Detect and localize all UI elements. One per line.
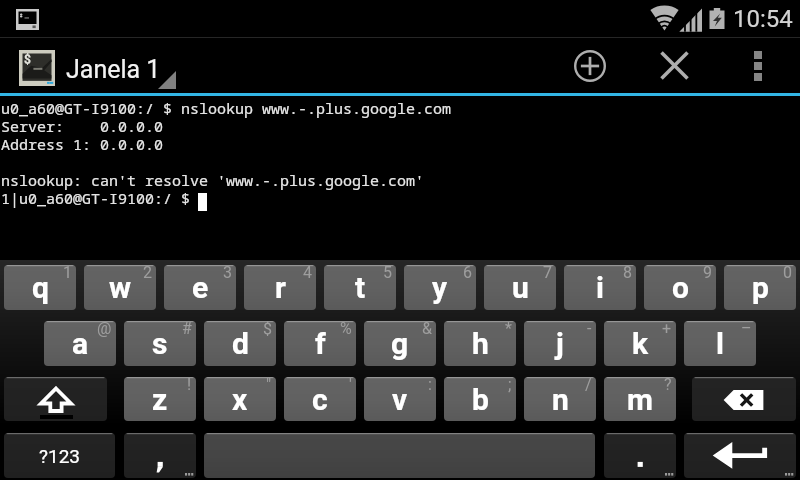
button[interactable]: ?123 — [4, 433, 115, 478]
button[interactable]: r — [244, 265, 316, 310]
staticText: Server: 0.0.0.0 — [1, 116, 164, 136]
staticText: + — [662, 321, 672, 338]
staticText: 1|u0_a60@GT-I9100:/ $ — [1, 188, 200, 208]
button[interactable]: Comma — [124, 433, 196, 478]
button[interactable]: q — [4, 265, 76, 310]
staticText: " — [266, 377, 272, 394]
staticText: ?123 — [39, 445, 81, 467]
button[interactable]: New window — [558, 38, 622, 93]
staticText: : — [428, 377, 432, 394]
staticText: $ — [263, 321, 272, 338]
button[interactable]: Period — [604, 433, 676, 478]
staticText: % — [340, 321, 352, 338]
staticText: 7 — [543, 265, 552, 282]
button[interactable]: k — [604, 321, 676, 366]
staticText: y — [432, 270, 448, 305]
button[interactable]: z — [124, 377, 196, 421]
staticText: ? — [664, 377, 672, 394]
staticText: o — [672, 270, 689, 305]
button[interactable]: Space — [204, 433, 595, 478]
staticText: j — [556, 326, 564, 361]
staticText: – — [741, 321, 752, 338]
staticText: u0_a60@GT-I9100:/ $ nslookup www.-.plus.… — [1, 98, 452, 118]
staticText: ; — [508, 377, 512, 394]
staticText: w — [109, 270, 132, 305]
staticText: z — [152, 382, 168, 417]
button[interactable]: c — [284, 377, 356, 421]
staticText: r — [275, 270, 286, 305]
staticText: & — [422, 321, 432, 338]
staticText: k — [632, 326, 649, 361]
staticText: ! — [187, 377, 192, 394]
staticText: g — [391, 326, 409, 361]
staticText: 4 — [303, 265, 312, 282]
button[interactable]: t — [324, 265, 396, 310]
staticText: Janela 1 — [66, 55, 161, 84]
staticText: / — [585, 377, 592, 394]
staticText: 3 — [223, 265, 232, 282]
button[interactable]: Enter — [684, 433, 796, 478]
button[interactable]: u — [484, 265, 556, 310]
button[interactable]: d — [204, 321, 276, 366]
staticText: @ — [97, 321, 112, 338]
button[interactable]: b — [444, 377, 516, 421]
staticText: 10:54 — [733, 5, 793, 33]
button[interactable]: Close window — [642, 38, 706, 93]
staticText: p — [752, 270, 769, 305]
staticText: a — [72, 326, 89, 361]
button[interactable]: f — [284, 321, 356, 366]
staticText: 0 — [783, 265, 792, 282]
button[interactable]: n — [524, 377, 596, 421]
button[interactable]: s — [124, 321, 196, 366]
staticText: n — [552, 382, 569, 417]
staticText: - — [587, 321, 592, 338]
button[interactable]: x — [204, 377, 276, 421]
button[interactable]: e — [164, 265, 236, 310]
button[interactable]: m — [604, 377, 676, 421]
staticText: 5 — [383, 265, 392, 282]
button[interactable]: Shift — [4, 377, 107, 421]
staticText: i — [596, 270, 604, 305]
button[interactable]: i — [564, 265, 636, 310]
button[interactable]: Terminal app icon — [19, 50, 55, 86]
staticText: * — [505, 321, 512, 338]
staticText: c — [312, 382, 328, 417]
staticText: 1 — [63, 265, 72, 282]
staticText: m — [627, 382, 653, 417]
button[interactable]: y — [404, 265, 476, 310]
staticText: ' — [349, 377, 352, 394]
staticText: d — [232, 326, 249, 361]
button[interactable]: More options — [734, 38, 782, 93]
staticText: nslookup: can't resolve 'www.-.plus.goog… — [1, 170, 425, 190]
staticText: h — [472, 326, 489, 361]
staticText: 8 — [623, 265, 632, 282]
button[interactable]: j — [524, 321, 596, 366]
staticText: u — [512, 270, 529, 305]
button[interactable]: h — [444, 321, 516, 366]
button[interactable]: l — [684, 321, 756, 366]
staticText: 9 — [703, 265, 712, 282]
staticText: s — [152, 326, 168, 361]
staticText: e — [192, 270, 209, 305]
button[interactable]: a — [44, 321, 116, 366]
button[interactable]: w — [84, 265, 156, 310]
staticText: 2 — [143, 265, 152, 282]
staticText: b — [472, 382, 489, 417]
button[interactable]: v — [364, 377, 436, 421]
staticText: v — [392, 382, 408, 417]
button[interactable]: g — [364, 321, 436, 366]
button[interactable]: Backspace — [692, 377, 796, 421]
button[interactable]: o — [644, 265, 716, 310]
staticText: x — [232, 382, 248, 417]
staticText: # — [182, 321, 192, 338]
staticText: t — [355, 270, 366, 305]
button[interactable]: p — [724, 265, 796, 310]
staticText: f — [315, 326, 326, 361]
staticText: 6 — [463, 265, 472, 282]
staticText: q — [32, 270, 49, 305]
staticText: $ — [24, 53, 31, 67]
staticText: l — [716, 326, 724, 361]
staticText: Address 1: 0.0.0.0 — [1, 134, 164, 154]
